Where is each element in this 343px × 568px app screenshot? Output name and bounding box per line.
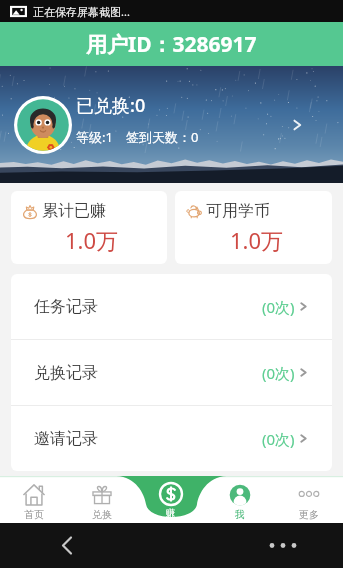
staticText: 签到天数：0 [126, 128, 199, 146]
button[interactable]: 累计已赚 [11, 191, 167, 264]
staticText: 正在保存屏幕截图... [33, 4, 130, 19]
staticText: 1.0万 [230, 225, 284, 255]
staticText: 兑换 [92, 508, 112, 521]
staticText: (0次) [262, 297, 295, 317]
staticText: 1.0万 [65, 225, 119, 255]
staticText: (0次) [262, 363, 295, 383]
button[interactable]: 赚 [136, 476, 205, 523]
staticText: 赚 [166, 507, 175, 518]
staticText: 用户ID：3286917 [86, 30, 257, 59]
staticText: 累计已赚 [42, 201, 106, 221]
button[interactable]: 兑换 [68, 476, 136, 523]
button[interactable]: 查看详情 [287, 115, 307, 135]
button[interactable]: 邀请记录 [11, 406, 332, 471]
staticText: 首页 [24, 508, 44, 521]
staticText: 已兑换:0 [76, 93, 146, 118]
staticText: 我 [235, 508, 245, 521]
staticText: 更多 [299, 508, 319, 521]
button[interactable]: Back [50, 523, 343, 568]
button[interactable]: 任务记录 [11, 274, 332, 339]
button[interactable]: 更多 [274, 476, 343, 523]
staticText: 等级:1 [76, 128, 113, 146]
staticText: 兑换记录 [34, 363, 98, 383]
staticText: (0次) [262, 429, 295, 449]
button[interactable]: 首页 [0, 476, 68, 523]
staticText: 任务记录 [34, 297, 98, 317]
button[interactable]: 兑换记录 [11, 340, 332, 405]
button[interactable]: 可用学币 [175, 191, 332, 264]
button[interactable]: 我 [205, 476, 274, 523]
staticText: 可用学币 [206, 201, 270, 221]
staticText: 邀请记录 [34, 429, 98, 449]
